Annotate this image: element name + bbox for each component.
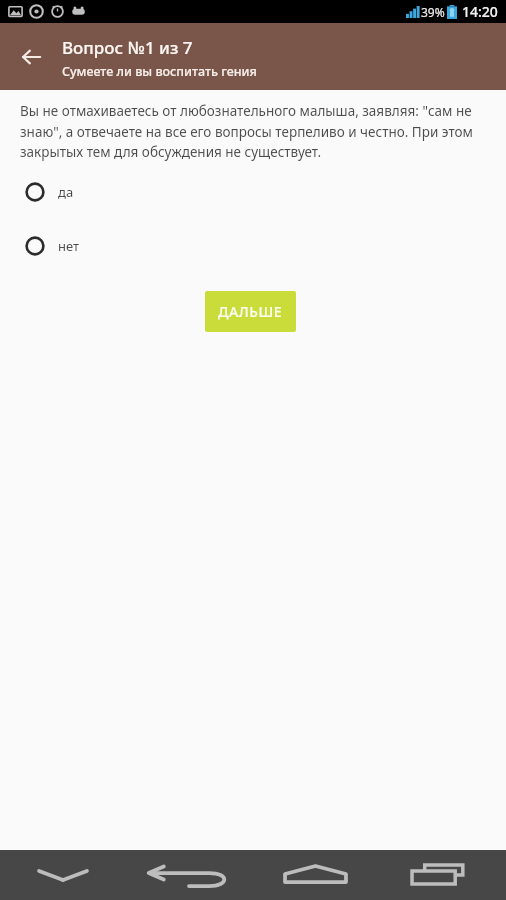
- button[interactable]: Recent apps: [379, 850, 506, 900]
- staticText: 39%: [421, 4, 445, 20]
- button[interactable]: Back: [126, 850, 252, 900]
- button[interactable]: да: [0, 179, 506, 205]
- staticText: нет: [58, 237, 80, 255]
- button[interactable]: ДАЛЬШЕ: [205, 291, 296, 332]
- button[interactable]: нет: [0, 233, 506, 259]
- staticText: 14:20: [462, 2, 498, 21]
- button[interactable]: Home: [252, 850, 379, 900]
- staticText: ДАЛЬШЕ: [218, 302, 283, 321]
- button[interactable]: Back: [10, 36, 52, 78]
- staticText: Вы не отмахиваетесь от любознательного м…: [20, 102, 482, 161]
- staticText: да: [58, 183, 74, 201]
- staticText: Сумеете ли вы воспитать гения: [62, 63, 257, 80]
- button[interactable]: Hide keyboard: [0, 850, 126, 900]
- staticText: Вопрос №1 из 7: [62, 36, 193, 59]
